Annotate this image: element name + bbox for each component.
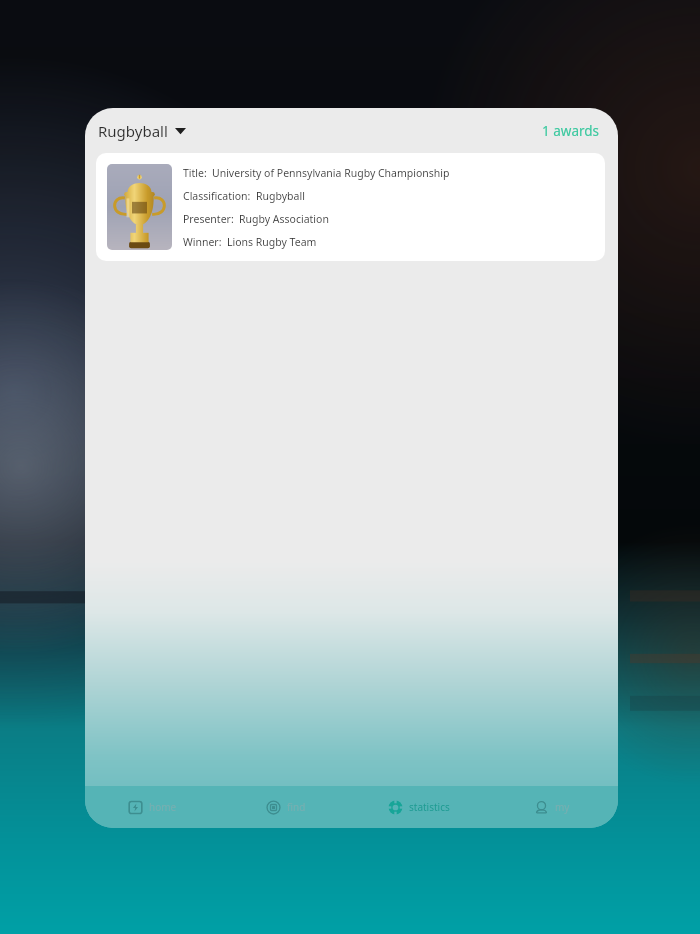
staticText: Title: — [183, 166, 207, 180]
button[interactable]: home — [85, 786, 219, 828]
button[interactable]: Title: — [96, 153, 605, 261]
staticText: Rugbyball — [256, 189, 305, 203]
staticText: home — [149, 800, 177, 814]
staticText: Presenter: — [183, 212, 234, 226]
staticText: Rugbyball — [98, 121, 168, 141]
button[interactable]: Rugbyball — [96, 117, 188, 145]
button[interactable]: my — [485, 786, 618, 828]
staticText: University of Pennsylvania Rugby Champio… — [212, 166, 450, 180]
staticText: my — [555, 800, 570, 814]
button[interactable]: find — [219, 786, 352, 828]
button[interactable]: 1 awards — [538, 118, 604, 144]
staticText: Classification: — [183, 189, 251, 203]
staticText: Lions Rugby Team — [227, 235, 317, 249]
staticText: Rugby Association — [239, 212, 329, 226]
staticText: find — [287, 800, 306, 814]
button[interactable]: statistics — [352, 786, 485, 828]
staticText: Winner: — [183, 235, 222, 249]
staticText: statistics — [409, 800, 450, 814]
